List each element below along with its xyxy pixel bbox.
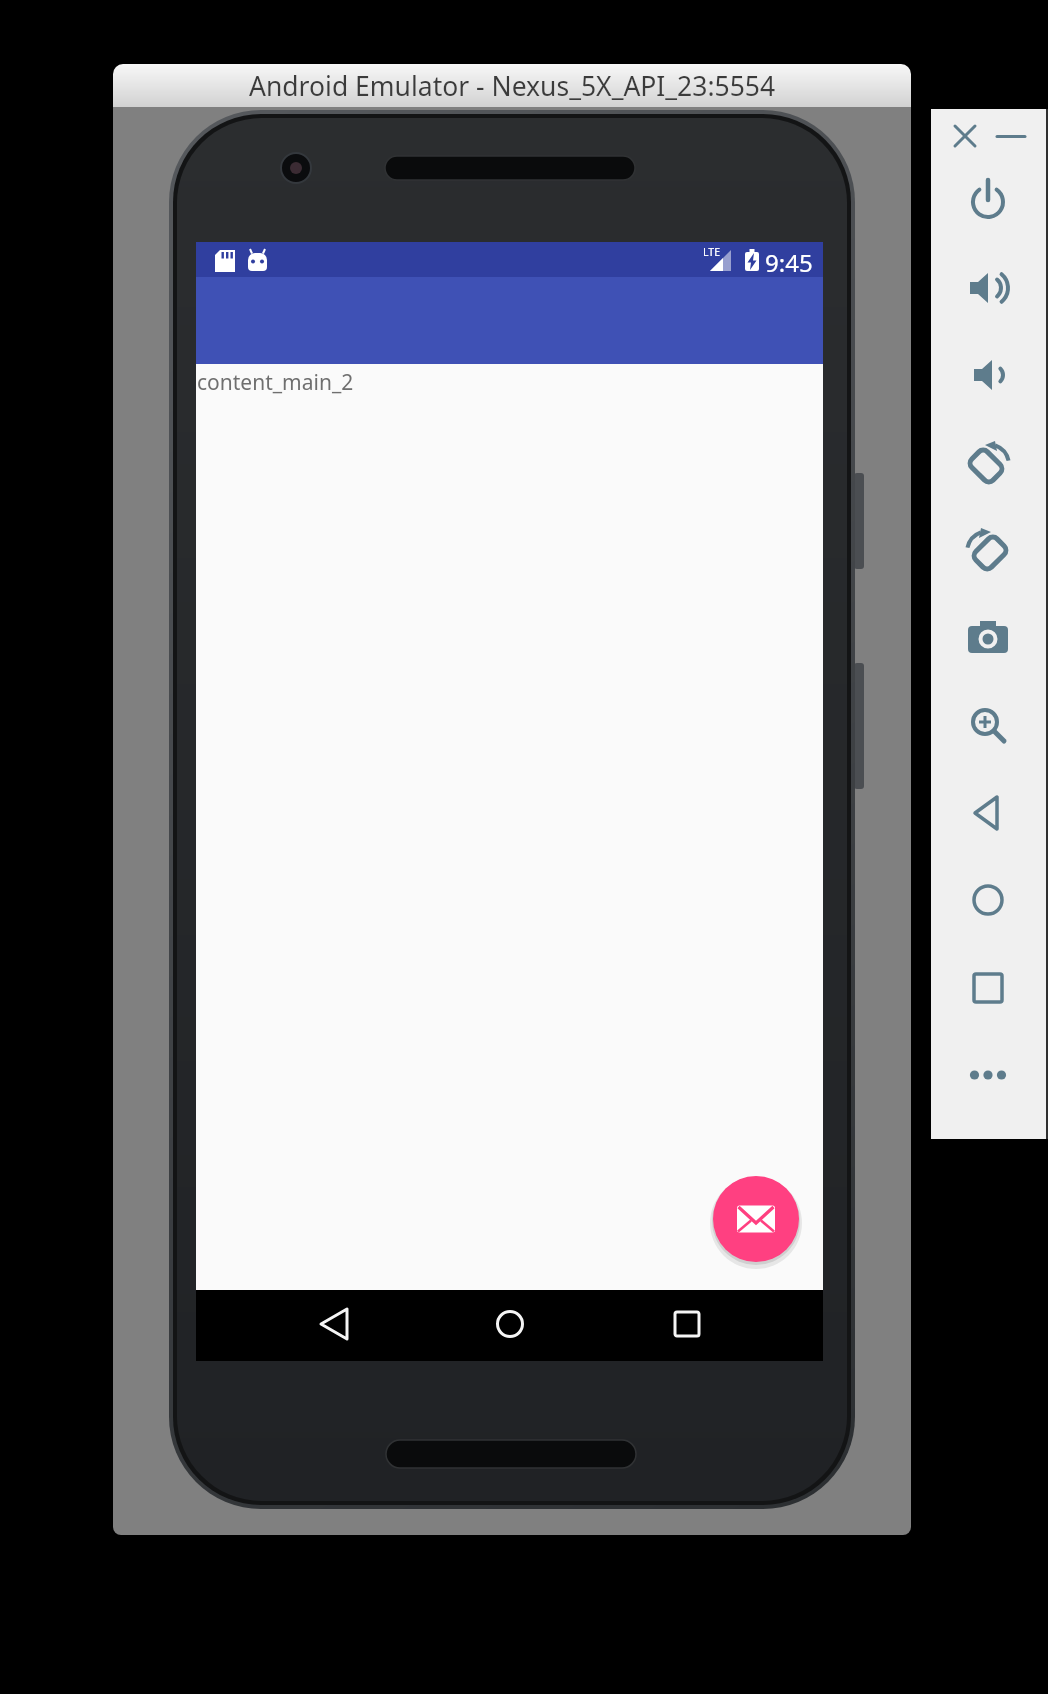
button[interactable] bbox=[966, 178, 1010, 222]
button[interactable] bbox=[966, 441, 1010, 485]
button[interactable] bbox=[653, 1300, 721, 1348]
button[interactable] bbox=[966, 703, 1010, 747]
staticText: Android Emulator - Nexus_5X_API_23:5554 bbox=[249, 68, 776, 104]
button[interactable] bbox=[966, 266, 1010, 310]
button[interactable] bbox=[966, 528, 1010, 572]
button[interactable] bbox=[966, 1053, 1010, 1097]
staticText: 9:45 bbox=[765, 246, 813, 279]
button[interactable] bbox=[997, 122, 1025, 150]
staticText: content_main_2 bbox=[197, 368, 354, 397]
button[interactable] bbox=[966, 353, 1010, 397]
button[interactable] bbox=[966, 878, 1010, 922]
staticText: LTE bbox=[703, 245, 720, 259]
button[interactable] bbox=[966, 791, 1010, 835]
button[interactable] bbox=[476, 1300, 544, 1348]
button[interactable] bbox=[951, 122, 979, 150]
button[interactable] bbox=[966, 966, 1010, 1010]
button[interactable] bbox=[300, 1300, 368, 1348]
button[interactable] bbox=[709, 1172, 803, 1266]
button[interactable] bbox=[966, 616, 1010, 660]
